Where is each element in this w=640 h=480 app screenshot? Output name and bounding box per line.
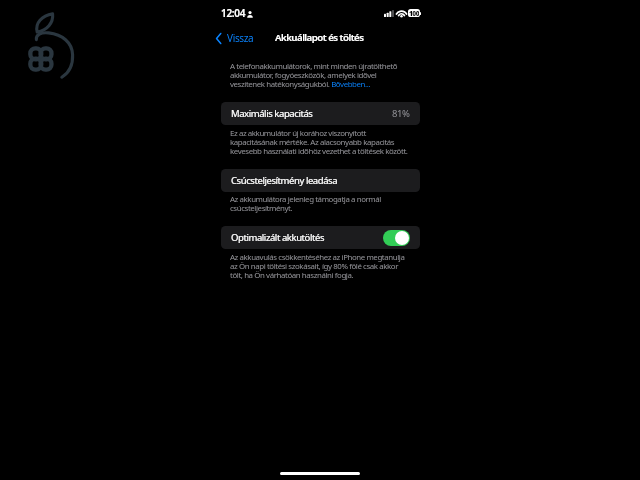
- button[interactable]: Vissza: [213, 29, 257, 47]
- staticText: Vissza: [227, 31, 254, 45]
- staticText: Csúcsteljesítmény leadása: [231, 174, 338, 187]
- other: Profil: [247, 8, 253, 18]
- staticText: Optimalizált akkutöltés: [231, 231, 325, 244]
- button[interactable]: Optimalizált akkutöltés: [221, 226, 420, 249]
- staticText: 81%: [392, 107, 410, 120]
- staticText: 100: [409, 9, 419, 17]
- staticText: Az akkuavulás csökkentéséhez az iPhone m…: [230, 252, 410, 280]
- staticText: A telefonakkumulátorok, mint minden újra…: [230, 61, 410, 89]
- other: Térerő, Wi-Fi, akkumulátor 100%: [384, 9, 421, 17]
- staticText: Akkuállapot és töltés: [275, 31, 364, 44]
- button[interactable]: Optimalizált akkutöltés kapcsoló: [383, 230, 410, 246]
- button[interactable]: Csúcsteljesítmény leadása: [221, 169, 420, 192]
- staticText: Maximális kapacitás: [231, 107, 313, 120]
- button[interactable]: Bővebben: [331, 79, 372, 88]
- staticText: Ez az akkumulátor új korához viszonyítot…: [230, 128, 410, 156]
- button[interactable]: Maximális kapacitás: [221, 102, 420, 125]
- staticText: 12:04: [221, 6, 246, 20]
- staticText: Az akkumulátora jelenleg támogatja a nor…: [230, 194, 410, 213]
